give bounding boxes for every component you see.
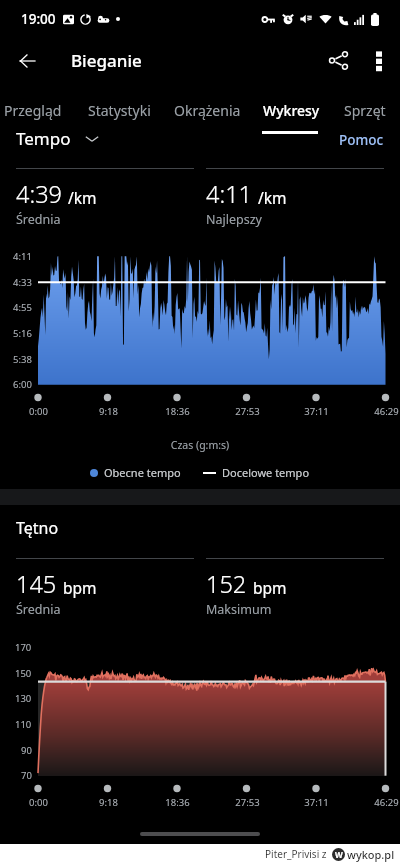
- button[interactable]: Udostępnij: [316, 38, 360, 82]
- staticText: 37:11: [304, 405, 329, 418]
- staticText: 6:00: [13, 378, 32, 391]
- button[interactable]: Wstecz: [5, 38, 50, 83]
- staticText: 130: [15, 692, 32, 705]
- staticText: /km: [258, 187, 287, 208]
- staticText: 18:36: [165, 405, 190, 418]
- staticText: 4:33: [13, 276, 32, 289]
- staticText: bpm: [253, 577, 287, 598]
- staticText: 27:53: [235, 796, 260, 809]
- staticText: Pomoc: [339, 131, 384, 149]
- staticText: Najlepszy: [206, 211, 262, 228]
- staticText: Statystyki: [88, 101, 151, 120]
- staticText: Tempo: [16, 127, 71, 150]
- button[interactable]: Więcej opcji: [357, 38, 400, 82]
- staticText: 46:29: [374, 796, 399, 809]
- staticText: bpm: [63, 577, 97, 598]
- staticText: 9:18: [99, 405, 118, 418]
- staticText: 5:16: [13, 327, 32, 340]
- staticText: 19:00: [21, 10, 56, 28]
- button[interactable]: Wykresy: [255, 96, 328, 124]
- staticText: Obecne tempo: [104, 465, 181, 480]
- staticText: Docelowe tempo: [222, 465, 310, 480]
- staticText: 70: [21, 769, 32, 782]
- staticText: 4:11: [206, 178, 252, 210]
- button[interactable]: Przegląd: [0, 96, 69, 124]
- staticText: 5:38: [13, 353, 32, 366]
- staticText: 145: [16, 568, 57, 600]
- staticText: W: [335, 849, 343, 860]
- staticText: 110: [15, 718, 32, 731]
- staticText: Wykresy: [263, 101, 320, 120]
- staticText: 150: [15, 667, 32, 680]
- staticText: 170: [15, 641, 32, 654]
- staticText: Średnia: [16, 601, 61, 618]
- staticText: 90: [21, 744, 32, 757]
- staticText: Tętno: [16, 517, 59, 539]
- staticText: Maksimum: [206, 601, 272, 618]
- button[interactable]: Sprzęt: [336, 96, 394, 124]
- staticText: 0:00: [29, 796, 48, 809]
- staticText: Piter_Privisi z: [265, 847, 327, 861]
- staticText: 152: [206, 568, 247, 600]
- staticText: Sprzęt: [344, 101, 386, 120]
- staticText: wykop.pl: [347, 847, 395, 862]
- staticText: 4:55: [13, 301, 32, 314]
- staticText: 4:11: [13, 250, 32, 263]
- staticText: Średnia: [16, 211, 61, 228]
- staticText: /km: [68, 187, 97, 208]
- staticText: Bieganie: [71, 49, 142, 72]
- staticText: Okrążenia: [174, 101, 241, 120]
- staticText: 27:53: [235, 405, 260, 418]
- staticText: 46:29: [374, 405, 399, 418]
- staticText: Przegląd: [4, 101, 62, 120]
- staticText: 37:11: [304, 796, 329, 809]
- button[interactable]: Tempo: [12, 124, 103, 153]
- button[interactable]: Pomoc: [333, 128, 390, 152]
- button[interactable]: Statystyki: [78, 96, 160, 124]
- staticText: Czas (g:m:s): [0, 438, 400, 452]
- staticText: 9:18: [99, 796, 118, 809]
- staticText: 18:36: [165, 796, 190, 809]
- button[interactable]: Okrążenia: [167, 96, 248, 124]
- staticText: 4:39: [16, 178, 62, 210]
- staticText: 0:00: [29, 405, 48, 418]
